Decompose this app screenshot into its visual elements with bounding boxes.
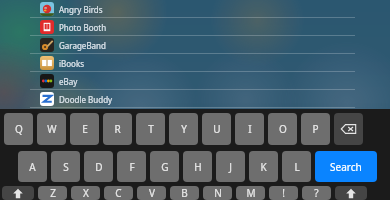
button[interactable]: iBooks	[0, 54, 390, 72]
button[interactable]: N	[203, 186, 232, 200]
button[interactable]: GarageBand	[0, 36, 390, 54]
staticText: X	[83, 186, 89, 200]
staticText: V	[149, 186, 155, 200]
button[interactable]: Shift	[2, 186, 34, 200]
button[interactable]: P	[301, 113, 330, 145]
staticText: F	[129, 160, 135, 174]
button[interactable]: Doodle Buddy	[0, 90, 390, 108]
button[interactable]: R	[103, 113, 132, 145]
staticText: O	[279, 122, 287, 136]
button[interactable]: V	[137, 186, 166, 200]
button[interactable]: Backspace	[334, 113, 363, 145]
button[interactable]: Search	[315, 151, 377, 182]
staticText: Q	[15, 122, 23, 136]
button[interactable]: E	[70, 113, 99, 145]
staticText: GarageBand	[59, 40, 106, 51]
staticText: Search	[330, 160, 362, 174]
staticText: D	[95, 160, 103, 174]
button[interactable]: C	[104, 186, 133, 200]
staticText: W	[47, 122, 57, 136]
staticText: R	[114, 122, 121, 136]
button[interactable]: F	[117, 151, 146, 182]
staticText: Doodle Buddy	[59, 94, 113, 105]
button[interactable]: Angry Birds	[0, 0, 390, 18]
button[interactable]: B	[170, 186, 199, 200]
staticText: P	[312, 122, 319, 136]
button[interactable]: G	[150, 151, 179, 182]
staticText: Y	[181, 122, 187, 136]
button[interactable]: T	[136, 113, 165, 145]
staticText: L	[294, 160, 300, 174]
staticText: eBay	[59, 76, 78, 87]
button[interactable]: Y	[169, 113, 198, 145]
button[interactable]: X	[71, 186, 100, 200]
button[interactable]: O	[268, 113, 297, 145]
button[interactable]: M	[236, 186, 265, 200]
staticText: Angry Birds	[59, 4, 103, 15]
staticText: U	[213, 122, 221, 136]
staticText: Z	[50, 186, 56, 200]
button[interactable]: A	[18, 151, 47, 182]
staticText: M	[246, 186, 256, 200]
staticText: Photo Booth	[59, 22, 107, 33]
button[interactable]: eBay	[0, 72, 390, 90]
staticText: iBooks	[59, 58, 85, 69]
staticText: T	[148, 122, 154, 136]
button[interactable]: D	[84, 151, 113, 182]
staticText: K	[260, 160, 267, 174]
button[interactable]: ?	[302, 186, 331, 200]
button[interactable]: Z	[38, 186, 67, 200]
button[interactable]: S	[51, 151, 80, 182]
button[interactable]: Photo Booth	[0, 18, 390, 36]
staticText: B	[181, 186, 188, 200]
button[interactable]: H	[183, 151, 212, 182]
button[interactable]: U	[202, 113, 231, 145]
staticText: !	[282, 186, 285, 200]
button[interactable]: K	[249, 151, 278, 182]
button[interactable]: Shift right	[335, 186, 367, 200]
staticText: J	[229, 160, 232, 174]
button[interactable]: !	[269, 186, 298, 200]
staticText: G	[161, 160, 169, 174]
staticText: I	[248, 122, 252, 136]
staticText: N	[214, 186, 222, 200]
button[interactable]: Q	[4, 113, 33, 145]
button[interactable]: L	[282, 151, 311, 182]
button[interactable]: J	[216, 151, 245, 182]
button[interactable]: W	[37, 113, 66, 145]
staticText: E	[82, 122, 88, 136]
staticText: S	[63, 160, 69, 174]
button[interactable]: I	[235, 113, 264, 145]
staticText: ?	[314, 186, 319, 200]
staticText: C	[115, 186, 122, 200]
staticText: A	[29, 160, 36, 174]
staticText: H	[194, 160, 202, 174]
